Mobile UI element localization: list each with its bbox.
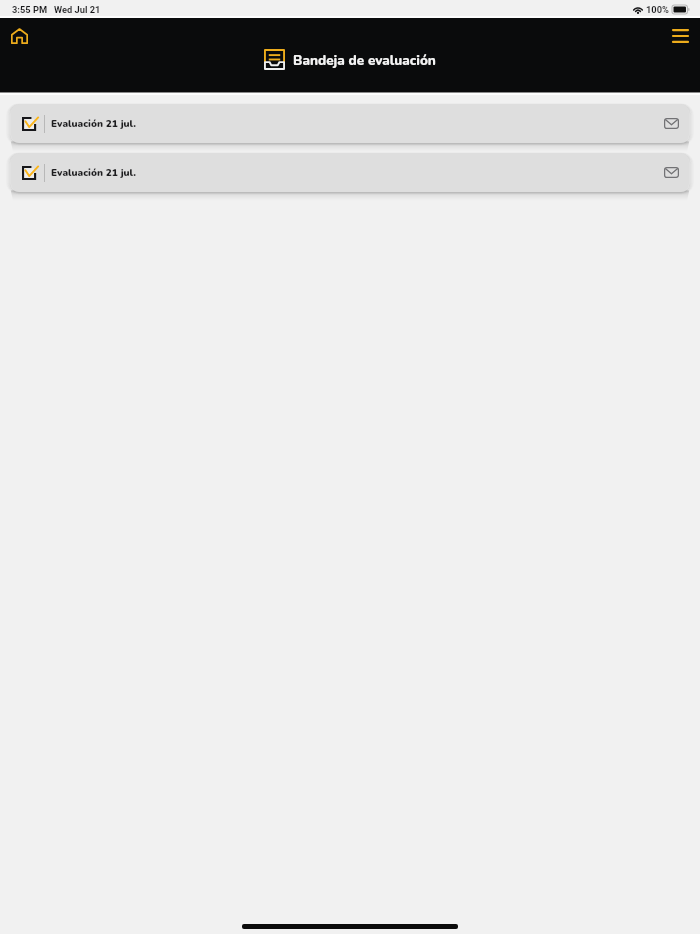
staticText: Evaluación 21 jul. (51, 166, 136, 180)
staticText: 100% (646, 4, 669, 15)
button[interactable]: Evaluación 21 jul. (11, 104, 689, 143)
staticText: Evaluación 21 jul. (51, 117, 136, 131)
other: Mark as read (664, 167, 679, 178)
staticText: Bandeja de evaluación (293, 51, 436, 69)
button[interactable]: Menu (666, 21, 695, 50)
button[interactable]: Home (5, 21, 34, 50)
other: Mark as read (664, 118, 679, 129)
staticText: 3:55 PM Wed Jul 21 (12, 4, 101, 15)
button[interactable]: Evaluación 21 jul. (11, 153, 689, 192)
